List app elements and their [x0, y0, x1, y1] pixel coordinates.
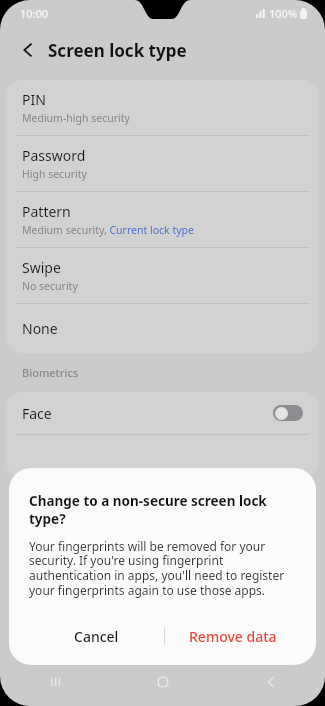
staticText: Medium-high security: [22, 111, 130, 125]
staticText: Face: [22, 404, 273, 423]
button[interactable]: Cancel: [29, 619, 164, 653]
button[interactable]: Swipe: [6, 248, 319, 303]
staticText: No security: [22, 279, 78, 293]
button[interactable]: Face toggle: [273, 405, 303, 421]
staticText: Swipe: [22, 258, 61, 277]
staticText: High security: [22, 167, 87, 181]
staticText: PIN: [22, 90, 46, 109]
staticText: Biometrics: [22, 365, 79, 380]
staticText: Screen lock type: [48, 39, 187, 62]
button[interactable]: None: [6, 304, 319, 353]
staticText: 10:00: [20, 6, 49, 21]
button[interactable]: Recents: [0, 658, 109, 706]
staticText: Password: [22, 146, 86, 165]
staticText: Pattern: [22, 202, 71, 221]
button[interactable]: Password: [6, 136, 319, 191]
button[interactable]: Remove data: [165, 619, 300, 653]
staticText: Change to a non-secure screen lock type?: [29, 492, 300, 528]
button[interactable]: Back: [217, 658, 325, 706]
staticText: 100%: [269, 6, 298, 21]
staticText: Your fingerprints will be removed for yo…: [29, 538, 300, 599]
button[interactable]: PIN: [6, 80, 319, 135]
button[interactable]: Face: [6, 392, 319, 434]
staticText: Medium security, Current lock type: [22, 223, 194, 237]
staticText: None: [22, 319, 58, 338]
staticText: Cancel: [74, 627, 119, 646]
button[interactable]: Back: [10, 32, 46, 68]
button[interactable]: Home: [109, 658, 217, 706]
staticText: Remove data: [189, 627, 277, 646]
button[interactable]: Pattern: [6, 192, 319, 247]
